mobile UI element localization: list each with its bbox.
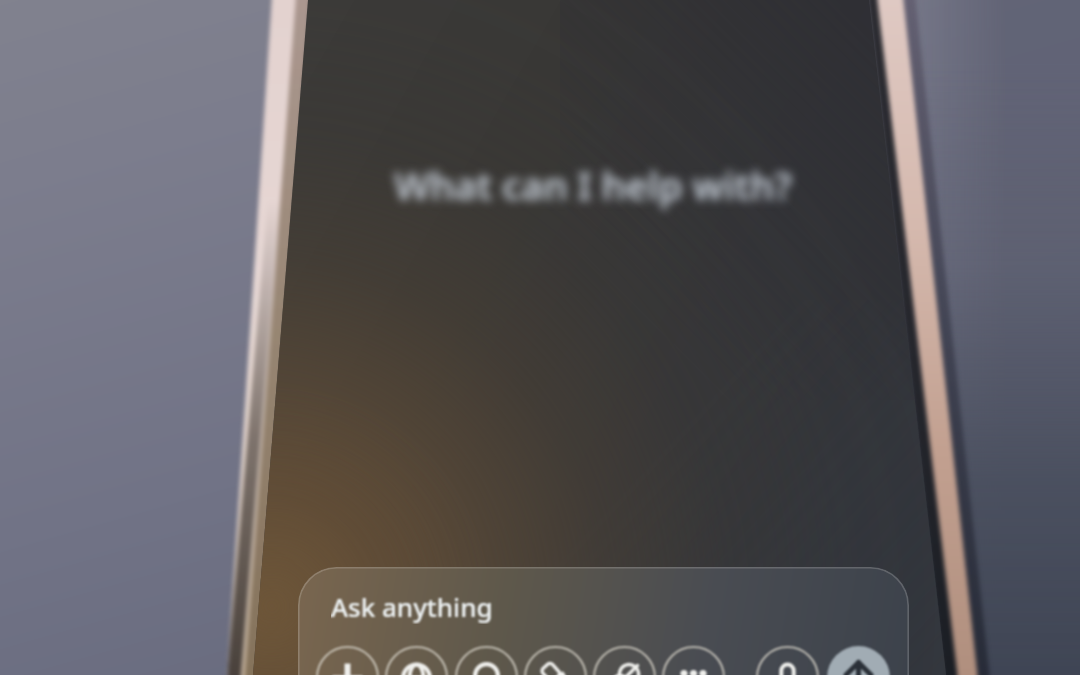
button[interactable]: Highlight [518,640,593,675]
button[interactable]: Think [449,640,524,675]
staticText: What can I help with? [350,159,836,234]
button[interactable]: Ask anything [298,567,909,675]
button[interactable]: More options [656,640,731,675]
button[interactable]: Agent [587,640,662,675]
button[interactable]: Attach [310,640,385,675]
button[interactable]: Send [821,640,896,675]
button[interactable]: Voice input [750,640,825,675]
button[interactable]: Search the web [379,640,454,675]
staticText: Ask anything [331,589,493,624]
